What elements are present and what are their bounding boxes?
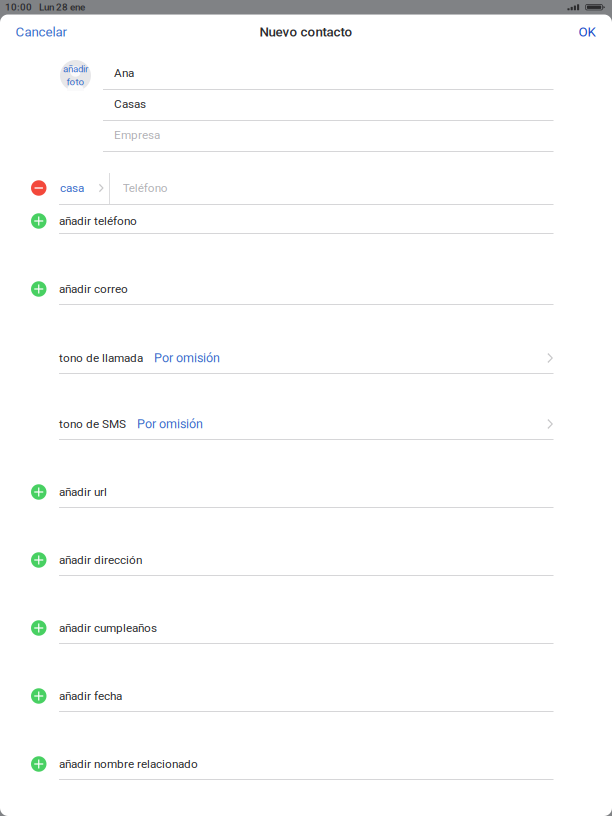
staticText: tono de llamada — [59, 351, 143, 365]
staticText: añadir nombre relacionado — [59, 757, 198, 771]
button[interactable]: tono de llamada — [0, 305, 612, 374]
staticText: Por omisión — [137, 417, 203, 431]
staticText: Nuevo contacto — [259, 24, 352, 40]
staticText: foto — [66, 76, 84, 88]
button[interactable]: tono de SMS — [0, 374, 612, 440]
button[interactable]: añadir nombre relacionado — [0, 712, 612, 780]
staticText: Casas — [114, 97, 146, 111]
button[interactable]: añadir fecha — [0, 644, 612, 712]
staticText: Teléfono — [123, 181, 168, 195]
staticText: añadir teléfono — [59, 214, 137, 228]
staticText: añadir dirección — [59, 553, 142, 567]
staticText: casa — [60, 181, 84, 195]
staticText: añadir correo — [59, 282, 128, 296]
staticText: añadir fecha — [59, 689, 122, 703]
button[interactable]: añadir url — [0, 440, 612, 508]
button[interactable]: Cancelar — [10, 19, 72, 45]
button[interactable]: añadir foto — [60, 60, 91, 91]
staticText: añadir cumpleaños — [59, 621, 157, 635]
staticText: tono de SMS — [59, 417, 126, 431]
staticText: Lun 28 ene — [39, 1, 85, 13]
button[interactable]: Empresa — [0, 121, 612, 152]
staticText: Empresa — [114, 128, 160, 142]
staticText: Ana — [114, 66, 134, 80]
staticText: OK — [578, 24, 595, 40]
staticText: añadir url — [59, 485, 107, 499]
button[interactable]: Ana — [0, 59, 612, 90]
button[interactable]: añadir correo — [0, 273, 612, 305]
button[interactable]: añadir cumpleaños — [0, 576, 612, 644]
button[interactable]: Casas — [0, 90, 612, 121]
staticText: añadir — [63, 63, 88, 75]
button[interactable]: añadir dirección — [0, 508, 612, 576]
button[interactable]: añadir teléfono — [0, 205, 612, 234]
staticText: 10:00 — [5, 1, 32, 13]
button[interactable]: casa — [0, 173, 612, 205]
staticText: Por omisión — [154, 351, 220, 365]
button[interactable]: OK — [573, 19, 600, 45]
staticText: Cancelar — [15, 24, 67, 40]
